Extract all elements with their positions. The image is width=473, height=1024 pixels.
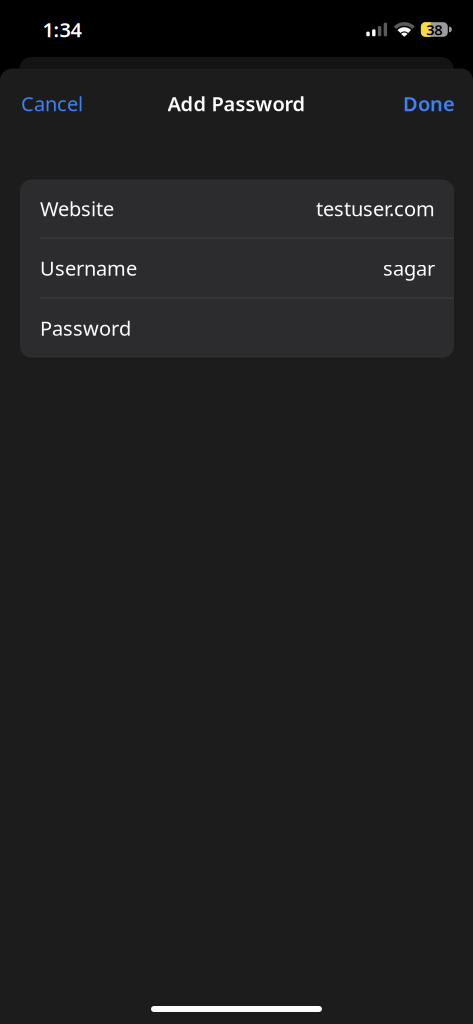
- staticText: Add Password: [167, 90, 305, 117]
- button[interactable]: Username: [20, 239, 454, 298]
- staticText: 1:34: [42, 16, 81, 43]
- staticText: 38: [426, 20, 442, 39]
- button[interactable]: Password: [20, 299, 454, 358]
- staticText: Done: [403, 90, 455, 117]
- staticText: Username: [40, 255, 137, 281]
- staticText: sagar: [383, 255, 435, 281]
- button[interactable]: Cancel: [21, 80, 83, 127]
- staticText: Cancel: [21, 90, 83, 117]
- button[interactable]: Done: [403, 80, 455, 127]
- staticText: Password: [40, 315, 131, 341]
- button[interactable]: Website: [20, 180, 454, 238]
- staticText: Website: [40, 195, 114, 222]
- staticText: testuser.com: [316, 195, 435, 222]
